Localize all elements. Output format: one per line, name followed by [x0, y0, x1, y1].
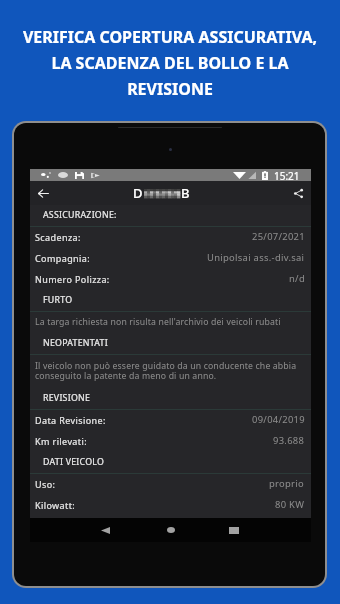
- button[interactable]: FURTO: [30, 290, 311, 311]
- staticText: Compagnia:: [35, 252, 91, 264]
- staticText: FURTO: [43, 294, 73, 306]
- staticText: ASSICURAZIONE:: [43, 209, 117, 221]
- staticText: D: [133, 184, 143, 202]
- staticText: La targa richiesta non risulta nell'arch…: [35, 316, 281, 328]
- staticText: 93.688: [273, 434, 305, 447]
- staticText: DATI VEICOLO: [43, 456, 105, 468]
- staticText: 09/04/2019: [252, 413, 305, 426]
- button[interactable]: Compagnia:: [30, 248, 311, 269]
- button[interactable]: Numero Polizza:: [30, 269, 311, 290]
- staticText: Scadenza:: [35, 231, 81, 243]
- staticText: Unipolsai ass.-div.sai: [207, 251, 305, 264]
- staticText: 15:21: [274, 169, 300, 181]
- staticText: Uso:: [35, 478, 56, 490]
- staticText: Data Revisione:: [35, 414, 106, 426]
- button[interactable]: Home: [143, 518, 199, 542]
- button[interactable]: Back: [30, 181, 56, 205]
- button[interactable]: ASSICURAZIONE:: [30, 205, 311, 226]
- button[interactable]: DATI VEICOLO: [30, 452, 311, 473]
- button[interactable]: NEOPATENTATI: [30, 333, 311, 354]
- button[interactable]: La targa richiesta non risulta nell'arch…: [30, 312, 311, 333]
- button[interactable]: Kilowatt:: [30, 495, 311, 516]
- staticText: VERIFICA COPERTURA ASSICURATIVA, LA SCAD…: [10, 26, 330, 100]
- button[interactable]: Data Revisione:: [30, 410, 311, 431]
- button[interactable]: REVISIONE: [30, 388, 311, 409]
- button[interactable]: Km rilevati:: [30, 431, 311, 452]
- staticText: NEOPATENTATI: [43, 337, 108, 349]
- staticText: Km rilevati:: [35, 435, 87, 447]
- button[interactable]: Back: [77, 518, 133, 542]
- button[interactable]: Recents: [206, 518, 262, 542]
- staticText: 80 KW: [275, 498, 305, 511]
- button[interactable]: Uso:: [30, 474, 311, 495]
- staticText: REVISIONE: [43, 392, 91, 404]
- button[interactable]: Scadenza:: [30, 227, 311, 248]
- staticText: proprio: [269, 477, 305, 490]
- staticText: Il veicolo non può essere guidato da un …: [35, 360, 305, 381]
- button[interactable]: Share: [285, 181, 311, 205]
- staticText: n/d: [289, 272, 305, 285]
- staticText: 25/07/2021: [252, 230, 305, 243]
- staticText: Kilowatt:: [35, 499, 76, 511]
- staticText: B: [181, 184, 190, 202]
- staticText: Numero Polizza:: [35, 273, 110, 285]
- button[interactable]: Il veicolo non può essere guidato da un …: [30, 355, 311, 388]
